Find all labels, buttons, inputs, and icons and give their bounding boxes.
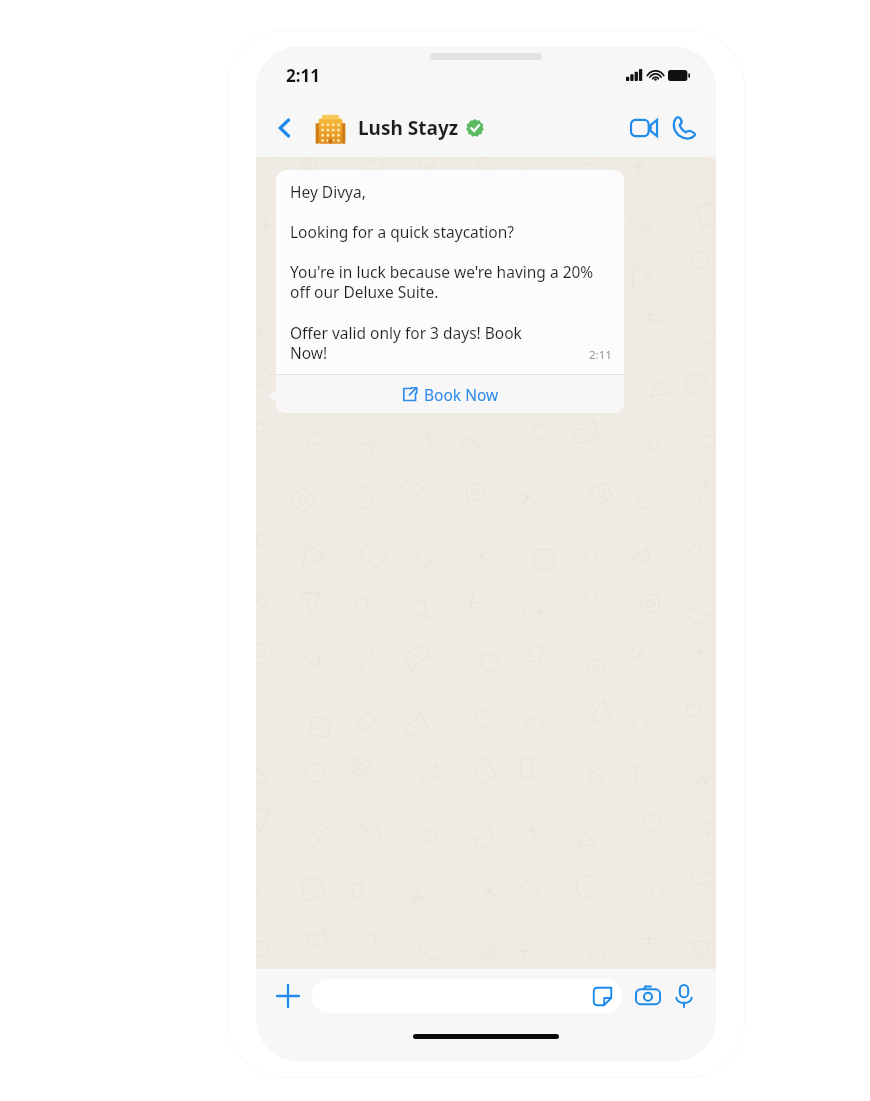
button[interactable]: Voice call	[664, 108, 704, 148]
button[interactable]: Voice message	[666, 978, 702, 1014]
button[interactable]: Lush Stayz profile	[312, 110, 348, 146]
button[interactable]: Camera	[630, 978, 666, 1014]
other: Stickers	[590, 984, 614, 1008]
staticText: 2:11	[286, 64, 320, 87]
staticText: Hey Divya,	[290, 181, 366, 202]
button[interactable]: Video call	[624, 108, 664, 148]
staticText: 2:11	[589, 347, 612, 363]
staticText: Book Now	[424, 384, 499, 405]
staticText: Looking for a quick staycation?	[290, 221, 515, 242]
button[interactable]: Hey Divya,	[276, 170, 624, 413]
button[interactable]: Stickers	[312, 979, 622, 1013]
staticText: Lush Stayz	[358, 115, 459, 141]
button[interactable]: Back	[268, 111, 302, 145]
button[interactable]: Attach	[270, 978, 306, 1014]
staticText: Offer valid only for 3 days! Book Now!	[290, 322, 558, 364]
staticText: You're in luck because we're having a 20…	[290, 261, 612, 303]
button[interactable]: Book Now	[276, 375, 624, 413]
